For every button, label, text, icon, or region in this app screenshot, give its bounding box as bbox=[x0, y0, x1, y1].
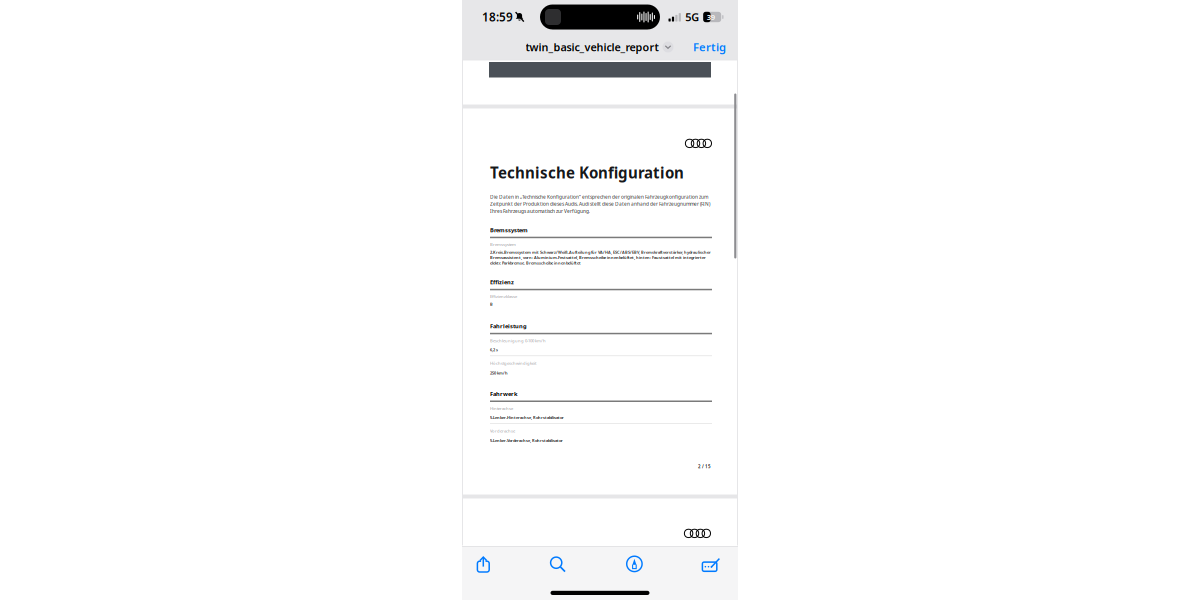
staticText: 5-Lenker-Hinterachse, Rohrstabilisator bbox=[490, 415, 564, 420]
button[interactable]: twin_basic_vehicle_report bbox=[521, 36, 677, 58]
staticText: Fahrwerk bbox=[490, 390, 518, 398]
button[interactable]: Search bbox=[536, 549, 580, 579]
staticText: Effizienz bbox=[490, 278, 514, 286]
button[interactable]: Fertig bbox=[687, 34, 732, 60]
button[interactable]: Markup bbox=[612, 549, 656, 579]
staticText: 5G bbox=[685, 10, 699, 24]
staticText: 2 / 15 bbox=[698, 463, 711, 469]
button[interactable]: Share bbox=[461, 549, 505, 579]
staticText: 9 bbox=[711, 12, 715, 22]
staticText: Fertig bbox=[693, 39, 726, 55]
button[interactable]: Fill and Sign bbox=[689, 550, 733, 580]
staticText: 18:59 bbox=[482, 9, 513, 25]
staticText: Vorderachse bbox=[490, 428, 515, 434]
staticText: 5-Lenker-Vorderachse, Rohrstabilisator bbox=[490, 438, 563, 443]
staticText: 3 bbox=[707, 12, 711, 22]
staticText: Hinterachse bbox=[490, 405, 513, 411]
staticText: Beschleunigung 0-100 km/h bbox=[490, 338, 546, 343]
staticText: Effizienzklasse bbox=[490, 293, 517, 299]
staticText: 6,2 s bbox=[490, 347, 498, 352]
staticText: Bremssystem bbox=[490, 226, 528, 234]
staticText: 2-Kreis-Bremssystem mit Schwarz/Weiß-Auf… bbox=[490, 249, 711, 266]
staticText: Die Daten in „Technische Konfiguration“ … bbox=[490, 193, 710, 214]
staticText: twin_basic_vehicle_report bbox=[525, 40, 658, 54]
staticText: Höchstgeschwindigkeit bbox=[490, 360, 536, 366]
staticText: Bremssystem bbox=[490, 241, 516, 247]
staticText: B bbox=[490, 301, 493, 307]
staticText: Fahrleistung bbox=[490, 322, 527, 330]
staticText: 250 km/h bbox=[490, 370, 508, 376]
staticText: Technische Konfiguration bbox=[490, 162, 684, 183]
